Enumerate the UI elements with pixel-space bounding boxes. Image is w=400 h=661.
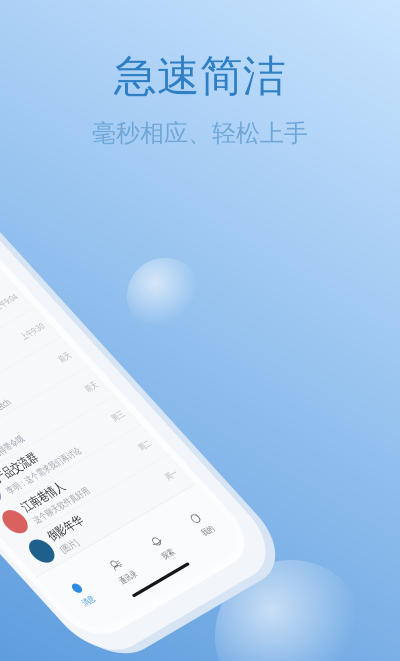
staticText: 上午9:04: [47, 537, 101, 554]
button[interactable]: Add: [68, 367, 88, 387]
button[interactable]: 订阅号消息: [0, 516, 114, 575]
staticText: 上午9:30: [47, 596, 101, 613]
staticText: 急速简洁: [114, 50, 286, 102]
staticText: 毫秒相应、轻松上手: [92, 118, 308, 148]
button[interactable]: 文件传输助手: [0, 634, 114, 661]
button[interactable]: 微信团队: [0, 575, 114, 634]
